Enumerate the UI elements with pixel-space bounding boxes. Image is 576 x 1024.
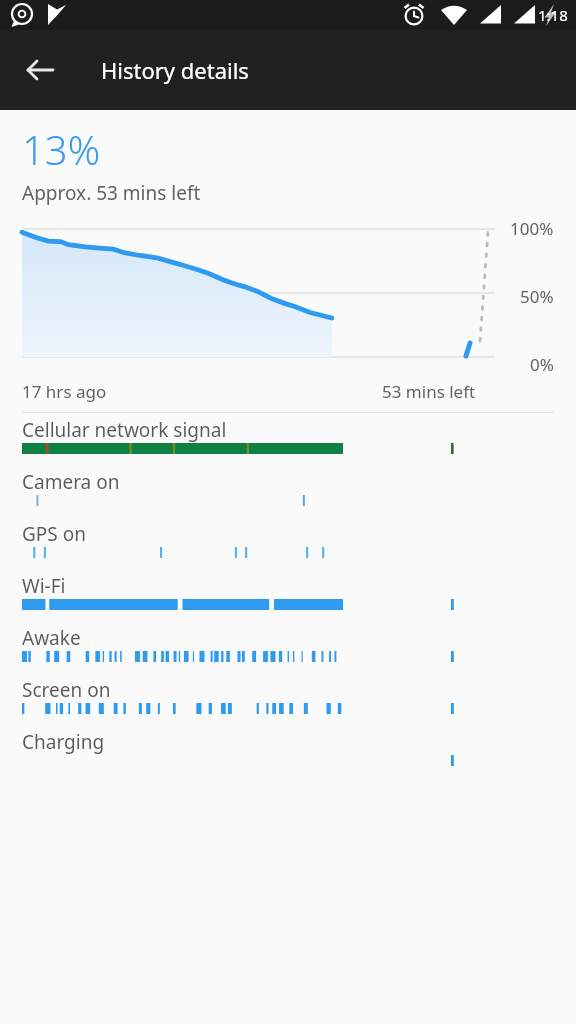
staticText: Wi-Fi — [22, 573, 66, 599]
staticText: 1:18 — [538, 5, 568, 25]
staticText: 0% — [530, 353, 554, 376]
staticText: Camera on — [22, 469, 120, 495]
staticText: 100% — [510, 217, 554, 240]
staticText: 17 hrs ago — [22, 380, 107, 403]
button[interactable]: Cellular network signal — [0, 414, 576, 466]
button[interactable]: GPS on — [0, 518, 576, 570]
staticText: Awake — [22, 625, 81, 651]
staticText: GPS on — [22, 521, 86, 547]
staticText: 53 mins left — [382, 380, 476, 403]
button[interactable]: Back — [12, 42, 68, 98]
staticText: 13% — [22, 122, 101, 176]
button[interactable]: Awake — [0, 622, 576, 674]
button[interactable]: Wi-Fi — [0, 570, 576, 622]
staticText: Charging — [22, 729, 105, 755]
staticText: 50% — [520, 285, 554, 308]
staticText: Cellular network signal — [22, 417, 227, 443]
staticText: Approx. 53 mins left — [22, 180, 201, 206]
button[interactable]: Camera on — [0, 466, 576, 518]
button[interactable]: Charging — [0, 726, 576, 778]
staticText: History details — [101, 55, 249, 85]
button[interactable]: Screen on — [0, 674, 576, 726]
staticText: Screen on — [22, 677, 111, 703]
